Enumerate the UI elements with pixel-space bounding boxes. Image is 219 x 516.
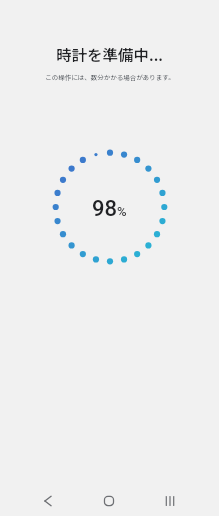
- button[interactable]: Recent apps: [150, 481, 190, 516]
- staticText: 98%: [92, 196, 127, 222]
- staticText: 時計を準備中...: [56, 43, 163, 63]
- button[interactable]: Home: [89, 481, 129, 516]
- button[interactable]: Back: [28, 481, 68, 516]
- staticText: この操作には、数分かかる場合があります。: [45, 72, 175, 81]
